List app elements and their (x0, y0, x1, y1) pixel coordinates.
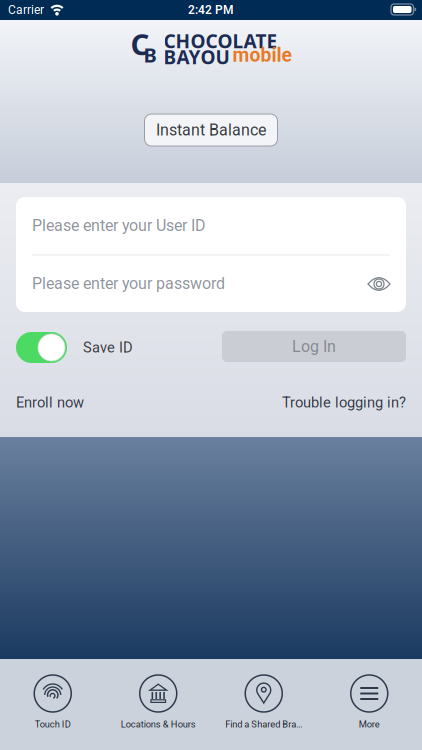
staticText: Find a Shared Bra... (225, 719, 302, 730)
staticText: B (143, 41, 156, 68)
button[interactable]: Enroll now (16, 394, 84, 411)
button[interactable]: More (316, 675, 422, 730)
staticText: Enroll now (16, 394, 84, 411)
button[interactable]: Save ID (16, 332, 133, 363)
button[interactable]: Show password (367, 276, 391, 292)
staticText: Locations & Hours (121, 719, 196, 730)
staticText: Please enter your password (32, 274, 225, 293)
staticText: Log In (292, 337, 336, 356)
staticText: mobile (232, 44, 291, 67)
button[interactable]: Please enter your password (16, 255, 406, 311)
staticText: C (130, 24, 149, 64)
button[interactable]: Find a Shared Bra... (211, 675, 316, 730)
staticText: Touch ID (35, 719, 71, 730)
button[interactable]: Please enter your User ID (16, 197, 406, 254)
staticText: More (359, 719, 380, 730)
staticText: Carrier (8, 3, 44, 17)
button[interactable]: Locations & Hours (105, 675, 211, 730)
staticText: Instant Balance (156, 121, 266, 139)
staticText: CHOCOLATE (163, 28, 277, 54)
button[interactable]: Trouble logging in? (282, 394, 406, 411)
button[interactable]: Touch ID (0, 675, 105, 730)
staticText: Save ID (83, 339, 133, 356)
staticText: BAYOU (163, 44, 229, 70)
staticText: Please enter your User ID (32, 216, 206, 235)
button[interactable]: Log In (222, 331, 406, 362)
button[interactable]: Instant Balance (144, 114, 277, 146)
staticText: Trouble logging in? (282, 394, 406, 411)
staticText: 2:42 PM (188, 3, 234, 17)
